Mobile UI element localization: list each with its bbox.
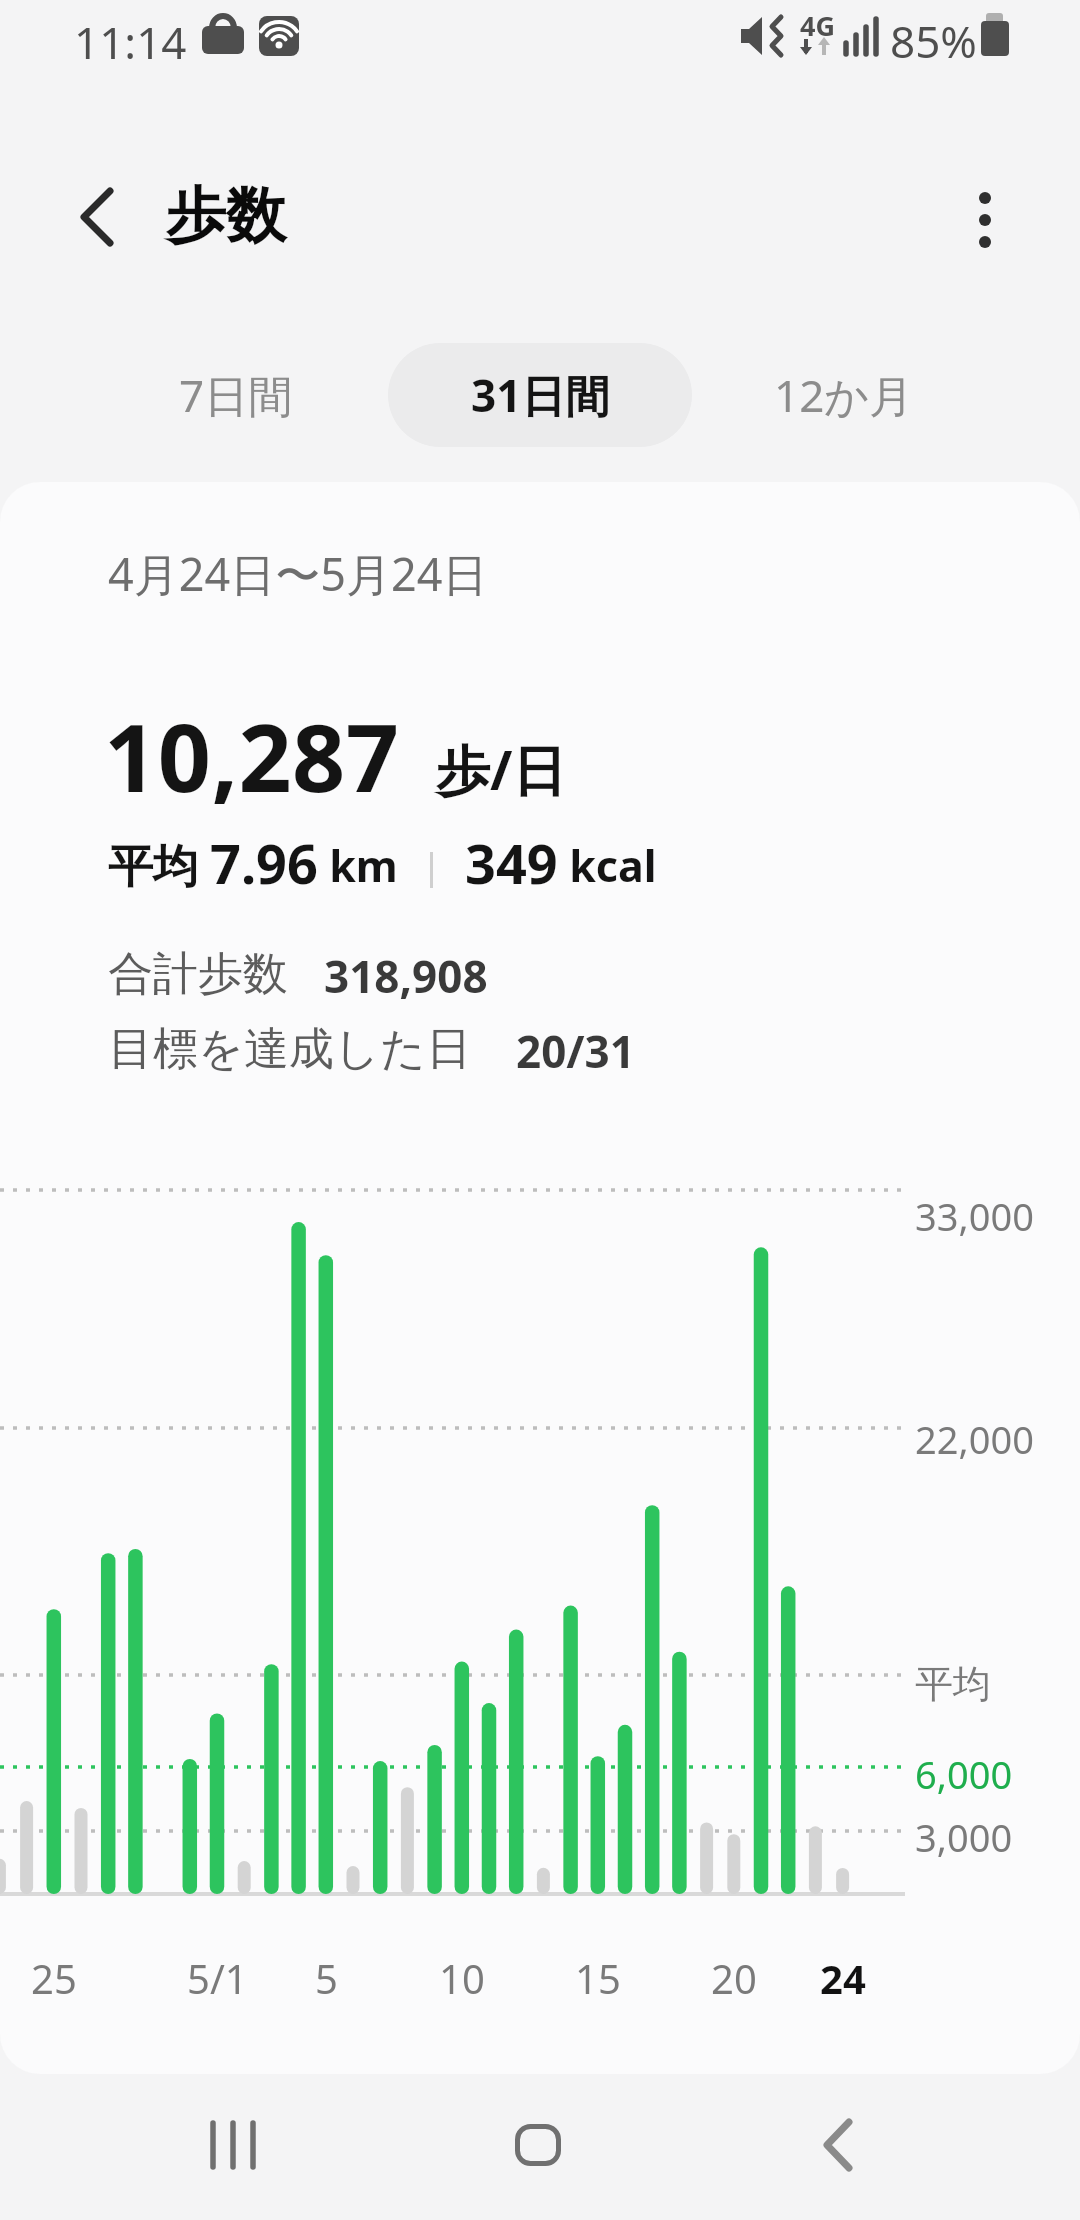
staticText: 7日間 xyxy=(179,365,293,425)
staticText: 22,000 xyxy=(915,1413,1034,1465)
staticText: 5/1 xyxy=(187,1951,248,2005)
button[interactable] xyxy=(55,175,140,260)
staticText: 合計歩数 xyxy=(108,946,288,1003)
staticText: 7.96 xyxy=(210,826,318,900)
staticText: 4G xyxy=(800,7,835,44)
staticText: km xyxy=(318,836,398,895)
button[interactable] xyxy=(478,2085,598,2205)
staticText: 10,287 xyxy=(104,693,400,820)
staticText: 25 xyxy=(31,1951,77,2005)
staticText: 3,000 xyxy=(915,1811,1013,1863)
staticText: 20 xyxy=(711,1951,757,2005)
staticText: 歩数 xyxy=(166,178,286,254)
staticText: 平均 xyxy=(915,1660,991,1708)
staticText: 33,000 xyxy=(915,1190,1034,1242)
staticText: 24 xyxy=(820,1951,866,2005)
staticText: 5 xyxy=(315,1951,338,2005)
staticText: 目標を達成した日 xyxy=(108,1021,472,1078)
button[interactable] xyxy=(778,2085,898,2205)
staticText: 318,908 xyxy=(324,946,488,1006)
staticText: 349 xyxy=(465,826,558,900)
staticText: 15 xyxy=(575,1951,621,2005)
staticText: kcal xyxy=(558,836,657,895)
button[interactable] xyxy=(173,2085,293,2205)
staticText: 11:14 xyxy=(74,12,187,72)
button[interactable]: 31日間 xyxy=(388,343,692,447)
button[interactable] xyxy=(945,175,1025,260)
button[interactable]: 12か月 xyxy=(692,343,996,447)
staticText: 31日間 xyxy=(471,365,610,425)
staticText: 10 xyxy=(439,1951,485,2005)
staticText: 12か月 xyxy=(774,365,914,425)
staticText: 6,000 xyxy=(915,1748,1013,1800)
staticText: 20/31 xyxy=(516,1021,635,1081)
button[interactable]: 7日間 xyxy=(84,343,388,447)
staticText: 歩/日 xyxy=(436,732,567,806)
staticText: 4月24日〜5月24日 xyxy=(108,543,488,604)
staticText: 平均 xyxy=(108,834,210,895)
staticText: 85% xyxy=(890,11,977,71)
